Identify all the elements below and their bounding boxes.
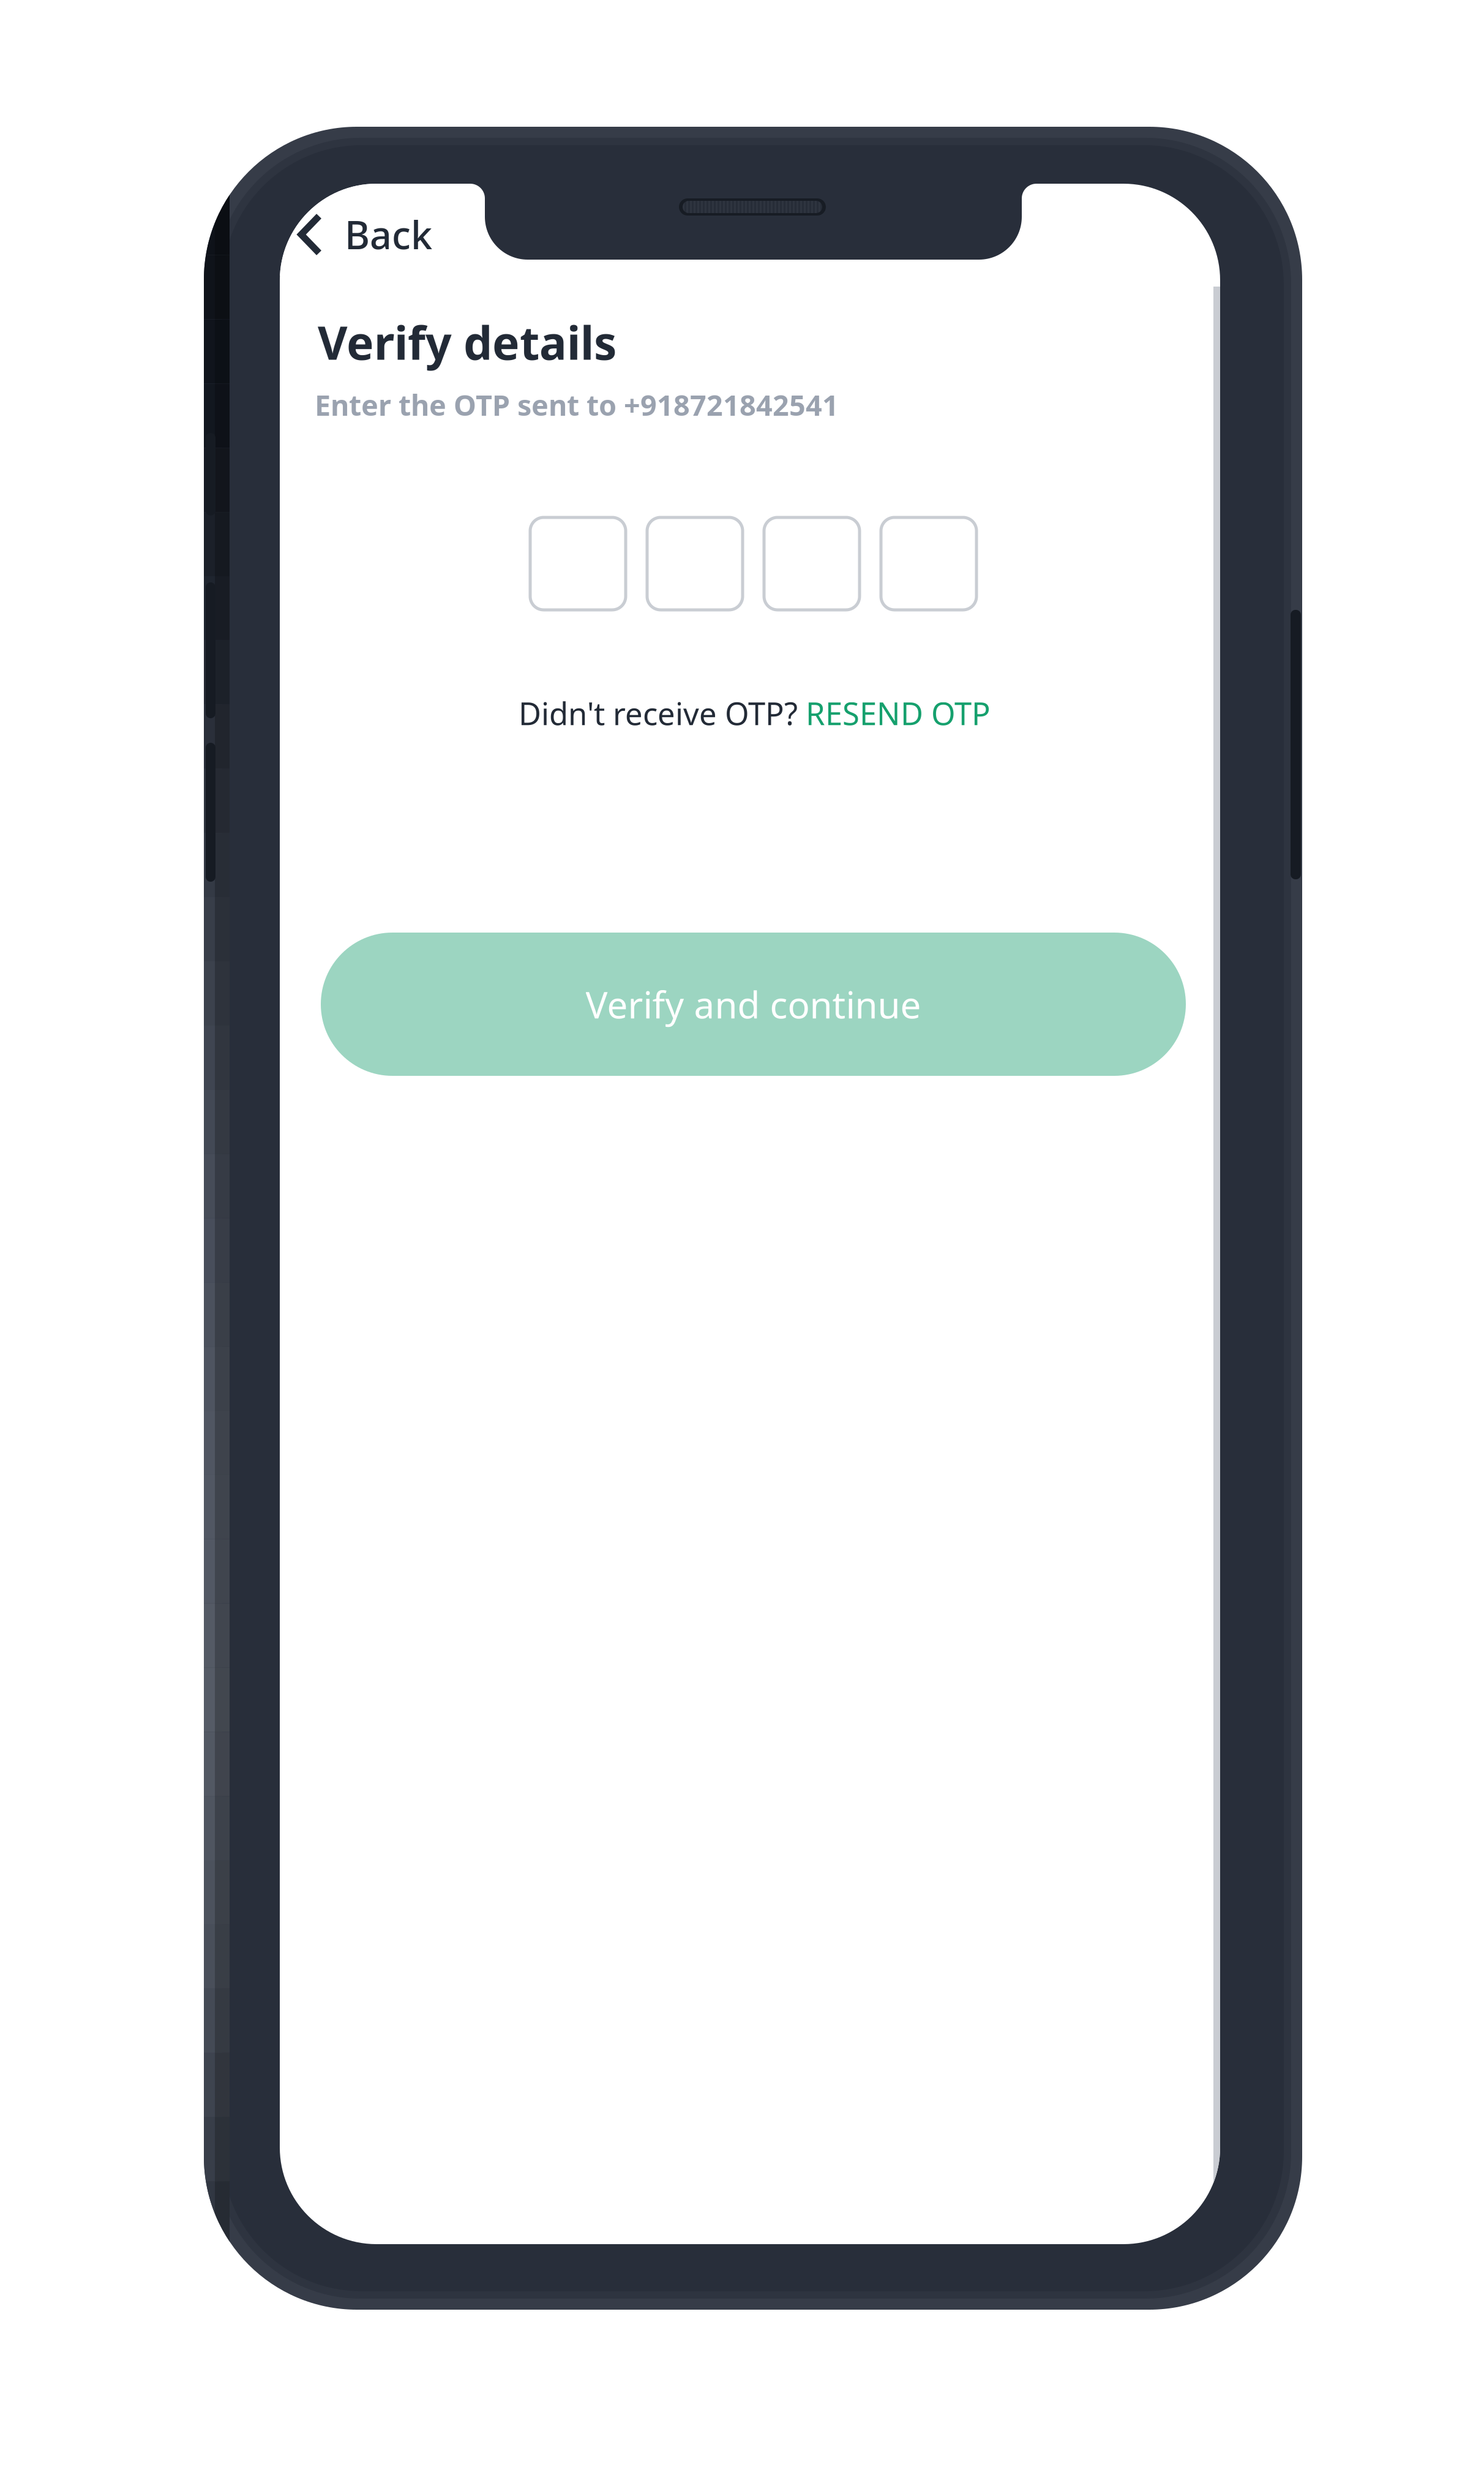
- staticText: Back: [345, 209, 432, 260]
- button[interactable]: OTP digit 1: [530, 517, 626, 610]
- button[interactable]: RESEND OTP: [806, 693, 991, 734]
- button[interactable]: Back: [280, 184, 463, 276]
- staticText: Didn't receive OTP?: [519, 693, 806, 734]
- staticText: RESEND OTP: [806, 693, 991, 734]
- staticText: Verify and continue: [586, 980, 921, 1029]
- button[interactable]: Verify and continue: [321, 933, 1186, 1076]
- button[interactable]: OTP digit 3: [764, 517, 860, 610]
- staticText: Enter the OTP sent to +918721842541: [315, 386, 839, 424]
- button[interactable]: OTP digit 2: [647, 517, 743, 610]
- staticText: Verify details: [318, 312, 616, 372]
- button[interactable]: OTP digit 4: [881, 517, 976, 610]
